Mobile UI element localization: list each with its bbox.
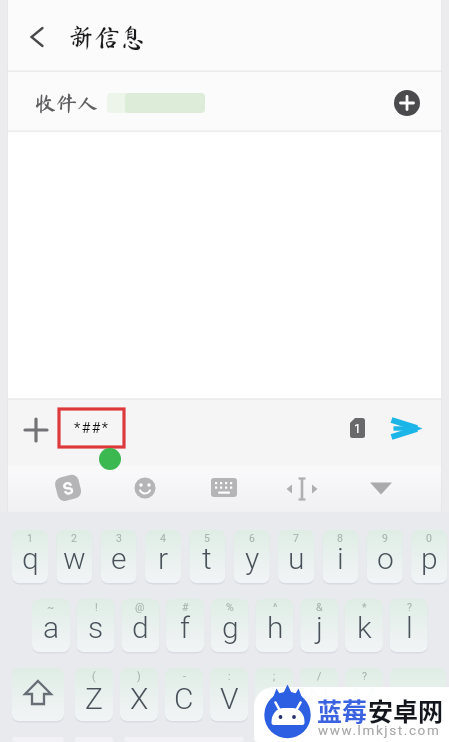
staticText: * [362, 601, 367, 613]
staticText: V [220, 681, 239, 716]
staticText: ! [95, 601, 98, 613]
staticText: p [421, 541, 438, 576]
staticText: 5 [204, 532, 210, 544]
staticText: 8 [337, 532, 343, 544]
staticText: w [63, 541, 86, 576]
staticText: ~ [47, 601, 55, 613]
staticText: h [267, 610, 284, 645]
staticText: 6 [249, 532, 255, 544]
staticText: ) [137, 670, 141, 682]
staticText: s [88, 610, 104, 645]
staticText: i [337, 541, 344, 576]
staticText: e [111, 541, 127, 576]
staticText: % [226, 601, 234, 613]
staticText: y [245, 541, 260, 576]
staticText: 9 [382, 532, 388, 544]
staticText: C [174, 681, 194, 716]
staticText: N [308, 681, 330, 716]
staticText: o [377, 541, 394, 576]
staticText: 安卓网 [368, 692, 444, 728]
staticText: 0 [426, 532, 432, 544]
staticText: *##* [74, 420, 110, 437]
staticText: B [265, 681, 284, 716]
staticText: k [357, 610, 372, 645]
staticText: 2 [71, 532, 77, 544]
staticText: 7 [293, 532, 299, 544]
staticText: q [22, 541, 39, 576]
staticText: 4 [160, 532, 166, 544]
staticText: ? [407, 601, 412, 613]
staticText: d [132, 610, 149, 645]
staticText: www.lmkjst.com [318, 722, 441, 738]
staticText: 新信息 [68, 24, 147, 50]
staticText: 收件人 [35, 93, 98, 114]
staticText: 1 [354, 422, 361, 436]
staticText: # [182, 601, 189, 613]
staticText: / [317, 670, 322, 682]
staticText: 1 [27, 532, 33, 544]
staticText: Z [85, 681, 103, 716]
staticText: M [351, 681, 377, 716]
staticText: f [180, 610, 190, 645]
staticText: ( [92, 670, 96, 682]
staticText: u [288, 541, 305, 576]
staticText: S [61, 478, 75, 499]
staticText: : [228, 670, 231, 682]
staticText: l [406, 610, 413, 645]
staticText: j [316, 610, 323, 645]
staticText: ^ [273, 601, 278, 613]
staticText: r [158, 541, 169, 576]
staticText: ? [362, 670, 367, 682]
staticText: g [222, 610, 239, 645]
staticText: a [43, 610, 60, 645]
staticText: & [316, 601, 323, 613]
staticText: @ [135, 601, 145, 613]
staticText: 3 [116, 532, 122, 544]
staticText: t [202, 541, 212, 576]
staticText: X [130, 681, 149, 716]
staticText: 蓝莓 [317, 692, 368, 728]
staticText: ; [273, 670, 276, 682]
staticText: - [183, 670, 186, 682]
